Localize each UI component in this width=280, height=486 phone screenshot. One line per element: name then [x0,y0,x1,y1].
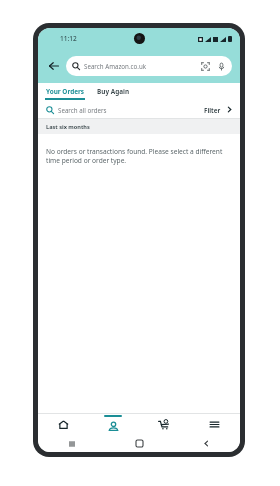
button[interactable]: Search all orders [46,100,204,119]
staticText: Filter [204,106,221,114]
button[interactable]: Search Amazon.co.uk [66,56,232,76]
staticText: Search Amazon.co.uk [84,62,201,70]
button[interactable]: Recents [38,435,106,452]
staticText: Search all orders [58,106,107,114]
staticText: Buy Again [97,87,130,96]
button[interactable]: Buy Again [91,83,136,100]
button[interactable]: Home [38,413,88,435]
staticText: 11:12 [60,34,77,43]
button[interactable]: Your Orders [38,83,91,100]
button[interactable]: Menu [189,413,240,435]
button[interactable]: Account [88,413,138,435]
button[interactable]: Back [173,435,240,452]
staticText: No orders or transactions found. Please … [46,147,230,165]
staticText: Last six months [46,123,90,131]
staticText: Your Orders [46,87,85,96]
button[interactable]: Back [46,58,62,74]
button[interactable]: Filter [204,100,240,119]
button[interactable]: Voice search [217,62,226,71]
button[interactable]: Scan with camera [201,62,210,71]
button[interactable]: Cart [138,413,189,435]
button[interactable]: Home [106,435,173,452]
